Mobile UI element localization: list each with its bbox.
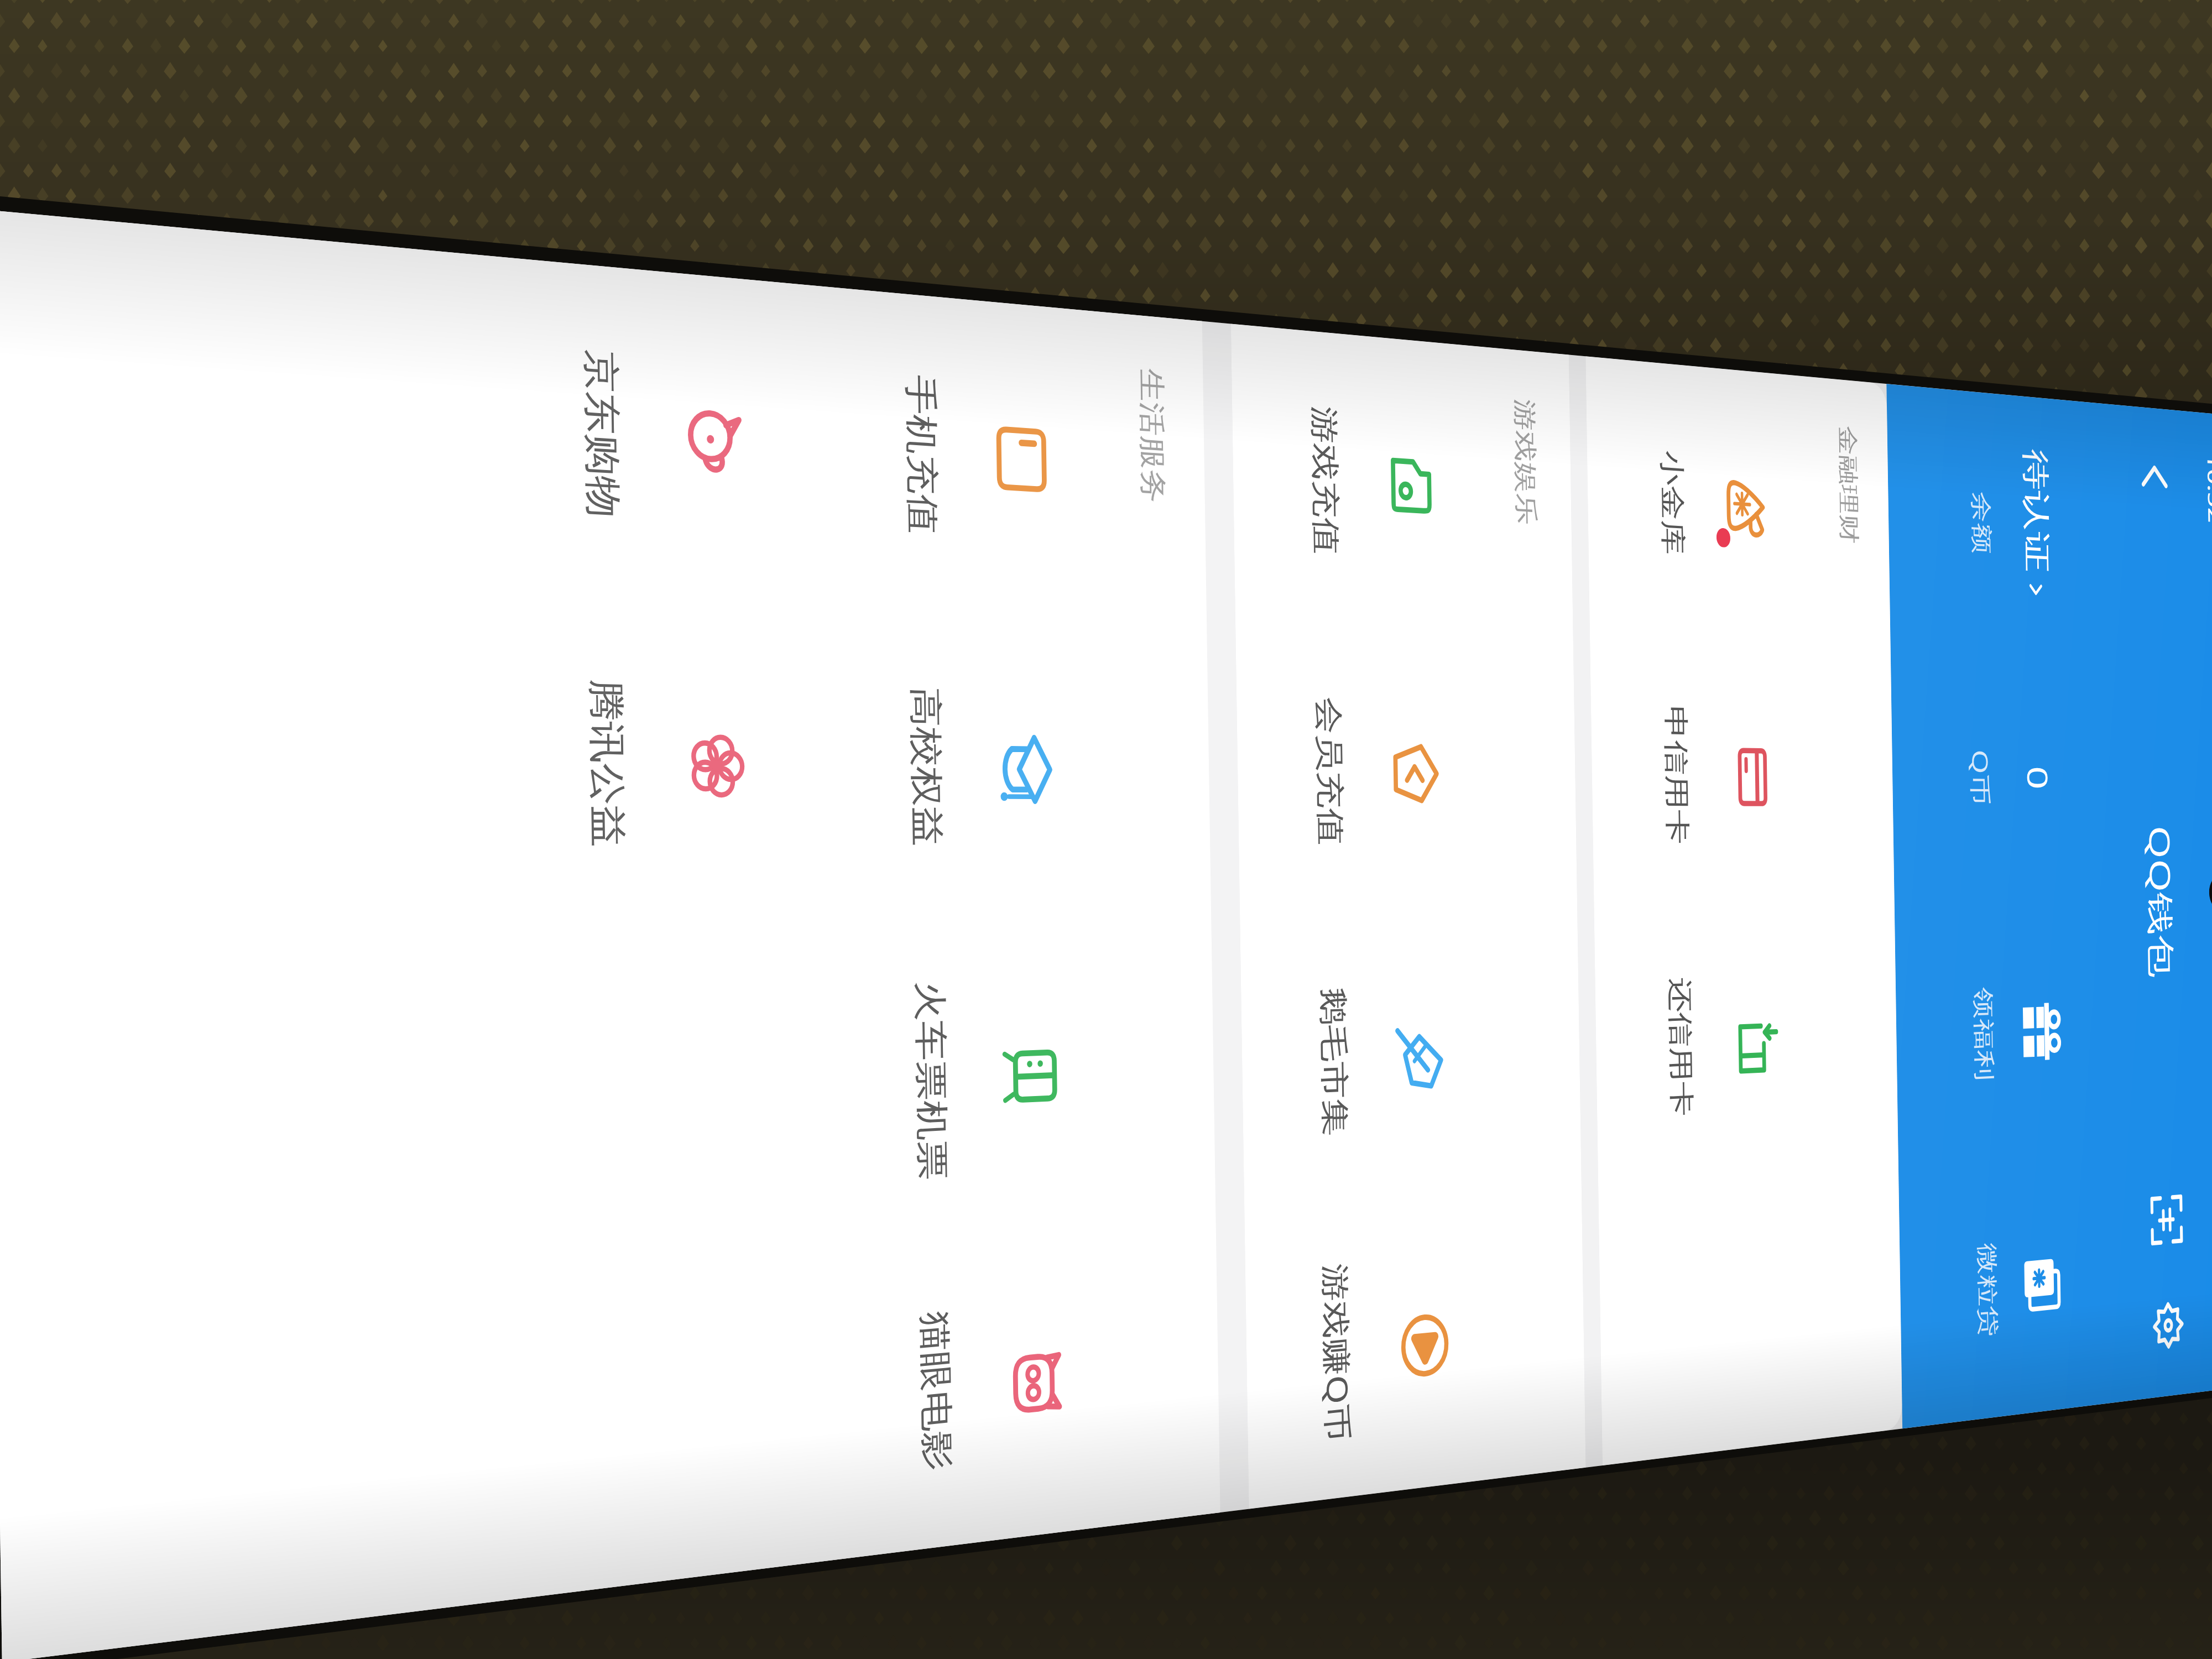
- button[interactable]: 猫眼电影: [912, 1226, 1068, 1550]
- staticText: 还信用卡: [1663, 977, 1697, 1117]
- staticText: 手机充值: [898, 373, 943, 536]
- staticText: 会员充值: [1309, 696, 1348, 846]
- button[interactable]: 还信用卡: [1662, 909, 1781, 1184]
- button[interactable]: Back: [2118, 417, 2192, 535]
- staticText: 领福利: [1970, 987, 1999, 1082]
- staticText: 10:52: [2202, 452, 2212, 527]
- staticText: 鹅毛市集: [1314, 987, 1353, 1137]
- staticText: Q币: [1967, 749, 1996, 807]
- staticText: QQ钱包: [2141, 825, 2181, 979]
- button[interactable]: 会员充值: [1308, 623, 1444, 917]
- button[interactable]: 待认证: [1927, 386, 2055, 655]
- staticText: 余额: [1968, 490, 1996, 555]
- staticText: 待认证: [2017, 447, 2054, 574]
- button[interactable]: 申信用卡: [1658, 637, 1777, 911]
- button[interactable]: 手机充值: [897, 291, 1053, 618]
- staticText: 微粒贷: [1974, 1242, 2002, 1338]
- staticText: 生活服务: [1135, 367, 1171, 505]
- staticText: 火车票机票: [908, 980, 953, 1182]
- button[interactable]: 京东购物: [575, 261, 748, 607]
- button[interactable]: 领福利: [1935, 905, 2063, 1165]
- staticText: 腾讯公益: [581, 678, 631, 848]
- button[interactable]: Settings: [2133, 1269, 2204, 1382]
- button[interactable]: 游戏赚Q币: [1315, 1199, 1453, 1500]
- staticText: 0: [2018, 765, 2057, 793]
- button[interactable]: 腾讯公益: [580, 595, 753, 928]
- staticText: 小金库: [1655, 448, 1689, 557]
- button[interactable]: 高校权益: [902, 607, 1058, 923]
- staticText: 金融理财: [1835, 424, 1863, 545]
- staticText: 游戏赚Q币: [1316, 1262, 1358, 1444]
- staticText: 猫眼电影: [913, 1310, 958, 1473]
- button[interactable]: 游戏充值: [1304, 328, 1440, 632]
- button[interactable]: 微粒贷: [1939, 1157, 2067, 1424]
- button[interactable]: 火车票机票: [907, 921, 1063, 1236]
- staticText: 京东购物: [576, 347, 626, 520]
- button[interactable]: Scan: [2131, 1165, 2202, 1276]
- button[interactable]: 鹅毛市集: [1313, 915, 1448, 1208]
- button[interactable]: 0: [1931, 647, 2059, 907]
- staticText: 游戏充值: [1305, 404, 1344, 556]
- button[interactable]: 小金库: [1654, 361, 1773, 644]
- staticText: 高校权益: [903, 686, 948, 847]
- staticText: 申信用卡: [1659, 705, 1693, 845]
- staticText: 游戏娱乐: [1510, 398, 1542, 526]
